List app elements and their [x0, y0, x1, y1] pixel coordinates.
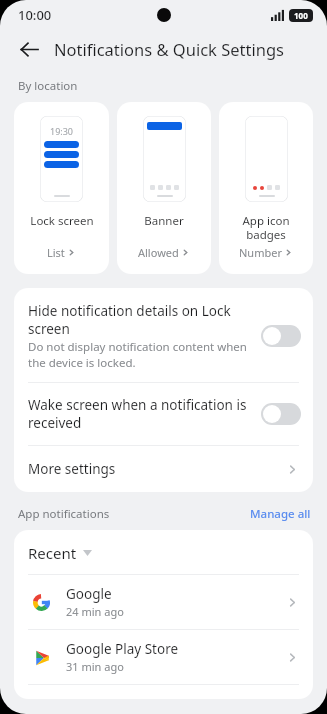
staticText: List — [47, 245, 65, 260]
staticText: 31 min ago — [66, 659, 124, 674]
button[interactable]: 19:30 — [14, 102, 109, 274]
staticText: Number — [239, 245, 282, 260]
button[interactable]: Google — [14, 575, 313, 629]
staticText: Do not display notification content when… — [28, 339, 253, 370]
staticText: Banner — [144, 213, 184, 229]
button[interactable]: App icon badges — [219, 102, 313, 274]
staticText: By location — [18, 78, 78, 94]
button[interactable]: Google Play Store — [14, 630, 313, 684]
button[interactable]: More settings — [14, 446, 313, 492]
button[interactable]: Hide notification details on Lock screen — [14, 288, 313, 382]
staticText: App icon badges — [242, 213, 290, 242]
staticText: 10:00 — [18, 6, 52, 24]
staticText: Recent — [28, 543, 77, 563]
staticText: Google Play Store — [66, 640, 179, 658]
staticText: Hide notification details on Lock screen — [28, 302, 253, 338]
staticText: Lock screen — [30, 213, 94, 229]
staticText: Wake screen when a notification is recei… — [28, 396, 253, 432]
staticText: Google — [66, 585, 112, 603]
button[interactable]: Back — [12, 32, 46, 66]
button[interactable]: Wake screen when a notification is recei… — [14, 383, 313, 445]
staticText: Allowed — [138, 245, 179, 260]
staticText: 100 — [294, 10, 308, 21]
staticText: Manage all — [250, 506, 311, 522]
staticText: 19:30 — [50, 125, 74, 137]
staticText: 24 min ago — [66, 604, 124, 619]
staticText: App notifications — [18, 506, 250, 522]
button[interactable]: Banner — [117, 102, 211, 274]
button[interactable]: Recent — [14, 530, 313, 574]
button[interactable]: Toggle — [261, 403, 301, 425]
button[interactable]: Manage all — [250, 506, 311, 522]
staticText: More settings — [28, 460, 286, 478]
button[interactable]: Toggle — [261, 325, 301, 347]
staticText: Notifications & Quick Settings — [54, 38, 284, 60]
